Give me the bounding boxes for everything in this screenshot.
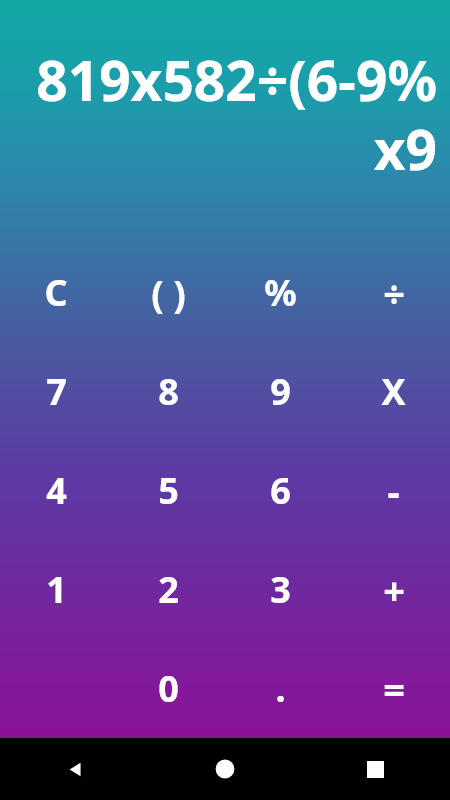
- button[interactable]: -: [337, 441, 450, 540]
- staticText: 2: [158, 565, 179, 614]
- button[interactable]: X: [337, 342, 450, 441]
- staticText: C: [44, 268, 68, 317]
- staticText: 0: [158, 664, 179, 713]
- button[interactable]: 6: [224, 441, 337, 540]
- staticText: X: [381, 367, 406, 416]
- button[interactable]: 3: [224, 540, 337, 639]
- button[interactable]: 9: [224, 342, 337, 441]
- button[interactable]: 8: [112, 342, 224, 441]
- button[interactable]: ÷: [337, 243, 450, 342]
- staticText: ( ): [151, 268, 186, 318]
- staticText: =: [383, 663, 405, 715]
- button[interactable]: 2: [112, 540, 224, 639]
- staticText: %: [264, 268, 297, 317]
- button[interactable]: 0: [112, 639, 224, 738]
- button[interactable]: Home: [150, 738, 300, 800]
- staticText: .: [275, 664, 286, 713]
- button[interactable]: 5: [112, 441, 224, 540]
- staticText: 8: [158, 367, 179, 416]
- button[interactable]: 4: [0, 441, 112, 540]
- staticText: 9: [270, 367, 291, 416]
- button[interactable]: %: [224, 243, 337, 342]
- button[interactable]: =: [337, 639, 450, 738]
- button[interactable]: Back: [0, 738, 150, 800]
- staticText: ÷: [383, 267, 405, 319]
- staticText: +: [383, 564, 405, 616]
- button[interactable]: .: [224, 639, 337, 738]
- button[interactable]: C: [0, 243, 112, 342]
- button[interactable]: 7: [0, 342, 112, 441]
- staticText: -: [387, 465, 400, 517]
- button[interactable]: Recent apps: [300, 738, 450, 800]
- staticText: 5: [158, 466, 179, 515]
- staticText: 4: [46, 466, 67, 515]
- button[interactable]: ( ): [112, 243, 224, 342]
- button[interactable]: 1: [0, 540, 112, 639]
- button[interactable]: +: [337, 540, 450, 639]
- staticText: 819x582÷(6-9%x9: [14, 42, 437, 186]
- staticText: 6: [270, 466, 291, 515]
- staticText: 1: [46, 565, 67, 614]
- staticText: 7: [46, 367, 67, 416]
- staticText: 3: [270, 565, 291, 614]
